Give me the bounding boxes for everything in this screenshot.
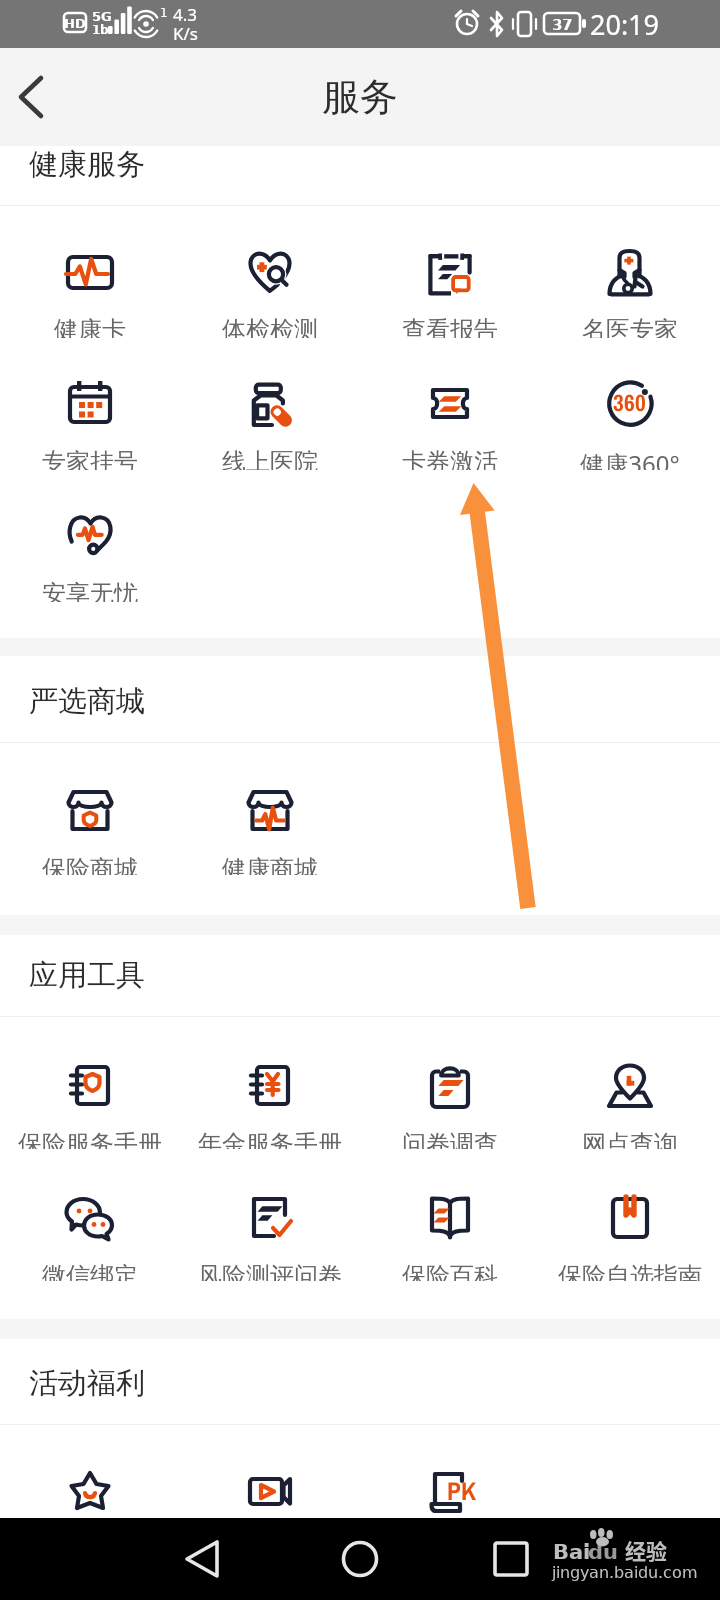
button[interactable]: 查看报告 [360, 206, 540, 338]
button[interactable]: 健康360° [540, 338, 720, 470]
staticText: 保险服务手册 [18, 1129, 162, 1149]
button[interactable]: 年金服务手册 [180, 1017, 360, 1149]
staticText: 名医专家 [582, 315, 678, 338]
button[interactable]: Back [0, 66, 62, 128]
staticText: 严选商城 [29, 683, 145, 720]
button[interactable]: 保险服务手册 [0, 1017, 180, 1149]
staticText: 查看报告 [402, 315, 498, 338]
button[interactable]: 名医专家 [540, 206, 720, 338]
staticText: 年金服务手册 [198, 1129, 342, 1149]
staticText: 线上医院 [222, 447, 318, 470]
button[interactable]: 线上医院 [180, 338, 360, 470]
button[interactable]: 网点查询 [540, 1017, 720, 1149]
button[interactable] [0, 1425, 180, 1518]
staticText: 风险测评问卷 [198, 1261, 342, 1281]
button[interactable]: 安享无忧 [0, 470, 180, 602]
button[interactable]: Back [178, 1530, 236, 1588]
staticText: 专家挂号 [42, 447, 138, 470]
button[interactable]: Recents [482, 1530, 540, 1588]
staticText: 网点查询 [582, 1129, 678, 1149]
staticText: 健康卡 [54, 315, 126, 338]
staticText: 卡券激活 [402, 447, 498, 470]
staticText: 活动福利 [29, 1365, 145, 1402]
button[interactable]: 专家挂号 [0, 338, 180, 470]
button[interactable]: 卡券激活 [360, 338, 540, 470]
button[interactable]: 保险百科 [360, 1149, 540, 1281]
staticText: 微信绑定 [42, 1261, 138, 1281]
button[interactable]: Home [331, 1530, 389, 1588]
button[interactable] [360, 1425, 540, 1518]
staticText: 应用工具 [29, 957, 145, 994]
button[interactable]: 健康卡 [0, 206, 180, 338]
button[interactable]: 风险测评问卷 [180, 1149, 360, 1281]
staticText: 保险自选指南 [558, 1261, 702, 1281]
staticText: 安享无忧 [42, 579, 138, 602]
staticText: 健康360° [580, 447, 680, 470]
button[interactable]: 保险商城 [0, 743, 180, 875]
button[interactable] [180, 1425, 360, 1518]
staticText: 20:19 [590, 6, 660, 43]
staticText: 健康服务 [29, 146, 145, 183]
button[interactable]: 保险自选指南 [540, 1149, 720, 1281]
staticText: 健康商城 [222, 854, 318, 875]
staticText: 4.3 K/s [173, 3, 198, 45]
staticText: 保险商城 [42, 854, 138, 875]
button[interactable]: 微信绑定 [0, 1149, 180, 1281]
staticText: 服务 [322, 73, 398, 121]
staticText: 问卷调查 [402, 1129, 498, 1149]
button[interactable]: 健康商城 [180, 743, 360, 875]
button[interactable]: 体检检测 [180, 206, 360, 338]
staticText: 保险百科 [402, 1261, 498, 1281]
staticText: 体检检测 [222, 315, 318, 338]
button[interactable]: 问卷调查 [360, 1017, 540, 1149]
